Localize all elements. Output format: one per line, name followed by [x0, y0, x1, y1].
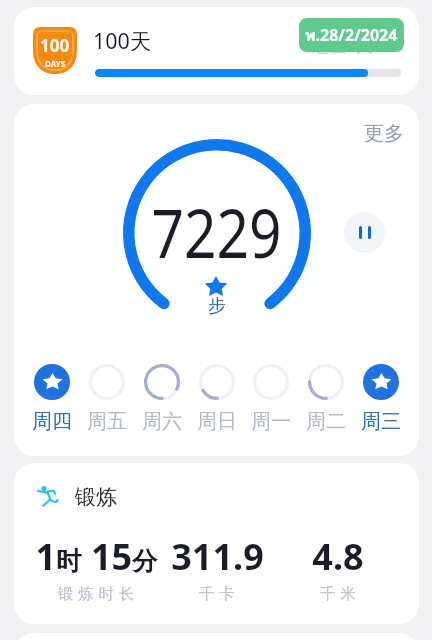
staticText: 311.9	[171, 532, 264, 581]
button[interactable]: Day status	[308, 364, 344, 400]
staticText: 100天	[93, 26, 152, 55]
button[interactable]: Day status	[34, 364, 70, 400]
button[interactable]: 锻炼	[14, 463, 419, 624]
staticText: 锻炼	[75, 484, 117, 510]
staticText: 100	[40, 34, 70, 57]
button[interactable]: Day status	[199, 364, 235, 400]
staticText: 周一	[251, 409, 291, 434]
staticText: 周四	[32, 409, 72, 434]
staticText: 千米	[320, 584, 361, 604]
staticText: 周六	[142, 409, 182, 434]
button[interactable]: Day status	[253, 364, 289, 400]
staticText: DAYS	[45, 58, 66, 69]
button[interactable]: Day status	[144, 364, 180, 400]
staticText: 周三	[361, 409, 401, 434]
staticText: 周二	[306, 409, 346, 434]
staticText: 1时 15分	[35, 532, 158, 581]
staticText: 7229	[151, 185, 282, 277]
staticText: 锻炼时长	[58, 584, 139, 604]
staticText: 更多	[364, 121, 404, 146]
staticText: 还差1天	[312, 34, 373, 57]
button[interactable]: Pause	[344, 212, 385, 253]
button[interactable]: Day status	[89, 364, 125, 400]
staticText: 周五	[87, 409, 127, 434]
button[interactable]: 更多	[360, 117, 408, 150]
staticText: 周日	[197, 409, 237, 434]
button[interactable]: Day status	[363, 364, 399, 400]
staticText: 千卡	[199, 584, 240, 604]
staticText: พ.28/2/2024	[305, 23, 398, 48]
staticText: 步	[208, 295, 226, 318]
staticText: 4.8	[312, 532, 364, 581]
button[interactable]: 100	[14, 7, 419, 95]
